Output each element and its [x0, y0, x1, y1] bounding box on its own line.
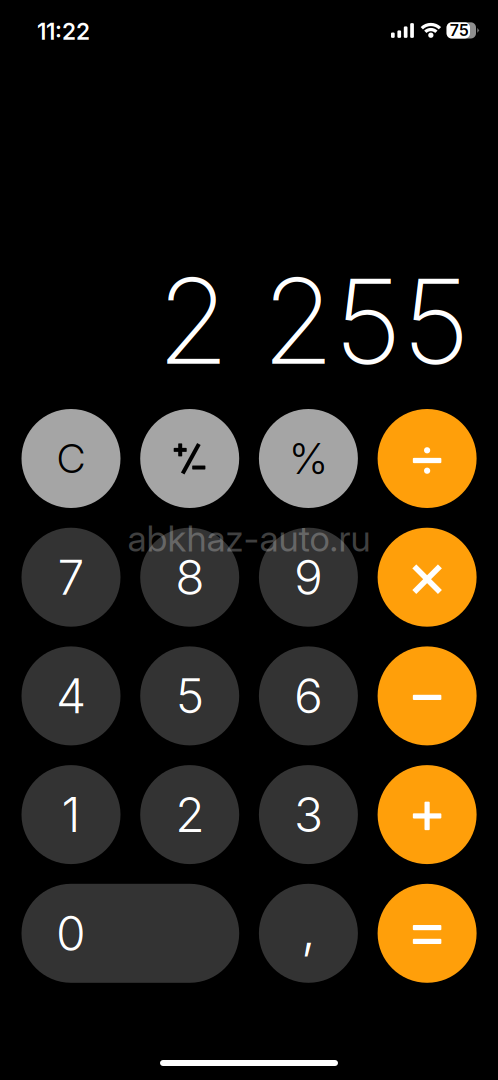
- button[interactable]: 7: [21, 528, 120, 627]
- staticText: 8: [175, 548, 204, 606]
- button[interactable]: 1: [21, 765, 120, 864]
- button[interactable]: 3: [259, 765, 358, 864]
- button[interactable]: ,: [259, 884, 358, 983]
- staticText: 9: [294, 548, 323, 606]
- button[interactable]: 2: [140, 765, 239, 864]
- staticText: 1: [61, 786, 80, 844]
- staticText: 2: [175, 786, 204, 844]
- button[interactable]: 5: [140, 646, 239, 745]
- button[interactable]: Plus: [378, 765, 477, 864]
- button[interactable]: 9: [259, 528, 358, 627]
- button[interactable]: 4: [21, 646, 120, 745]
- button[interactable]: Plus minus: [140, 409, 239, 508]
- staticText: 11:22: [37, 18, 90, 45]
- staticText: 0: [56, 904, 86, 962]
- staticText: 4: [56, 667, 86, 725]
- staticText: 6: [294, 667, 323, 725]
- button[interactable]: %: [259, 409, 358, 508]
- button[interactable]: 6: [259, 646, 358, 745]
- staticText: 7: [57, 548, 84, 606]
- button[interactable]: 0: [21, 884, 239, 983]
- staticText: 5: [176, 667, 204, 725]
- button[interactable]: Multiply: [378, 528, 477, 627]
- button[interactable]: Minus: [378, 646, 477, 745]
- staticText: %: [288, 433, 328, 484]
- staticText: 2 255: [157, 250, 470, 392]
- staticText: 75: [450, 20, 469, 40]
- staticText: C: [57, 434, 85, 483]
- button[interactable]: Divide: [378, 409, 477, 508]
- staticText: ,: [301, 896, 316, 960]
- button[interactable]: 8: [140, 528, 239, 627]
- button[interactable]: C: [21, 409, 120, 508]
- button[interactable]: Equals: [378, 884, 477, 983]
- staticText: 3: [294, 786, 323, 844]
- staticText: abkhaz-auto.ru: [127, 517, 370, 560]
